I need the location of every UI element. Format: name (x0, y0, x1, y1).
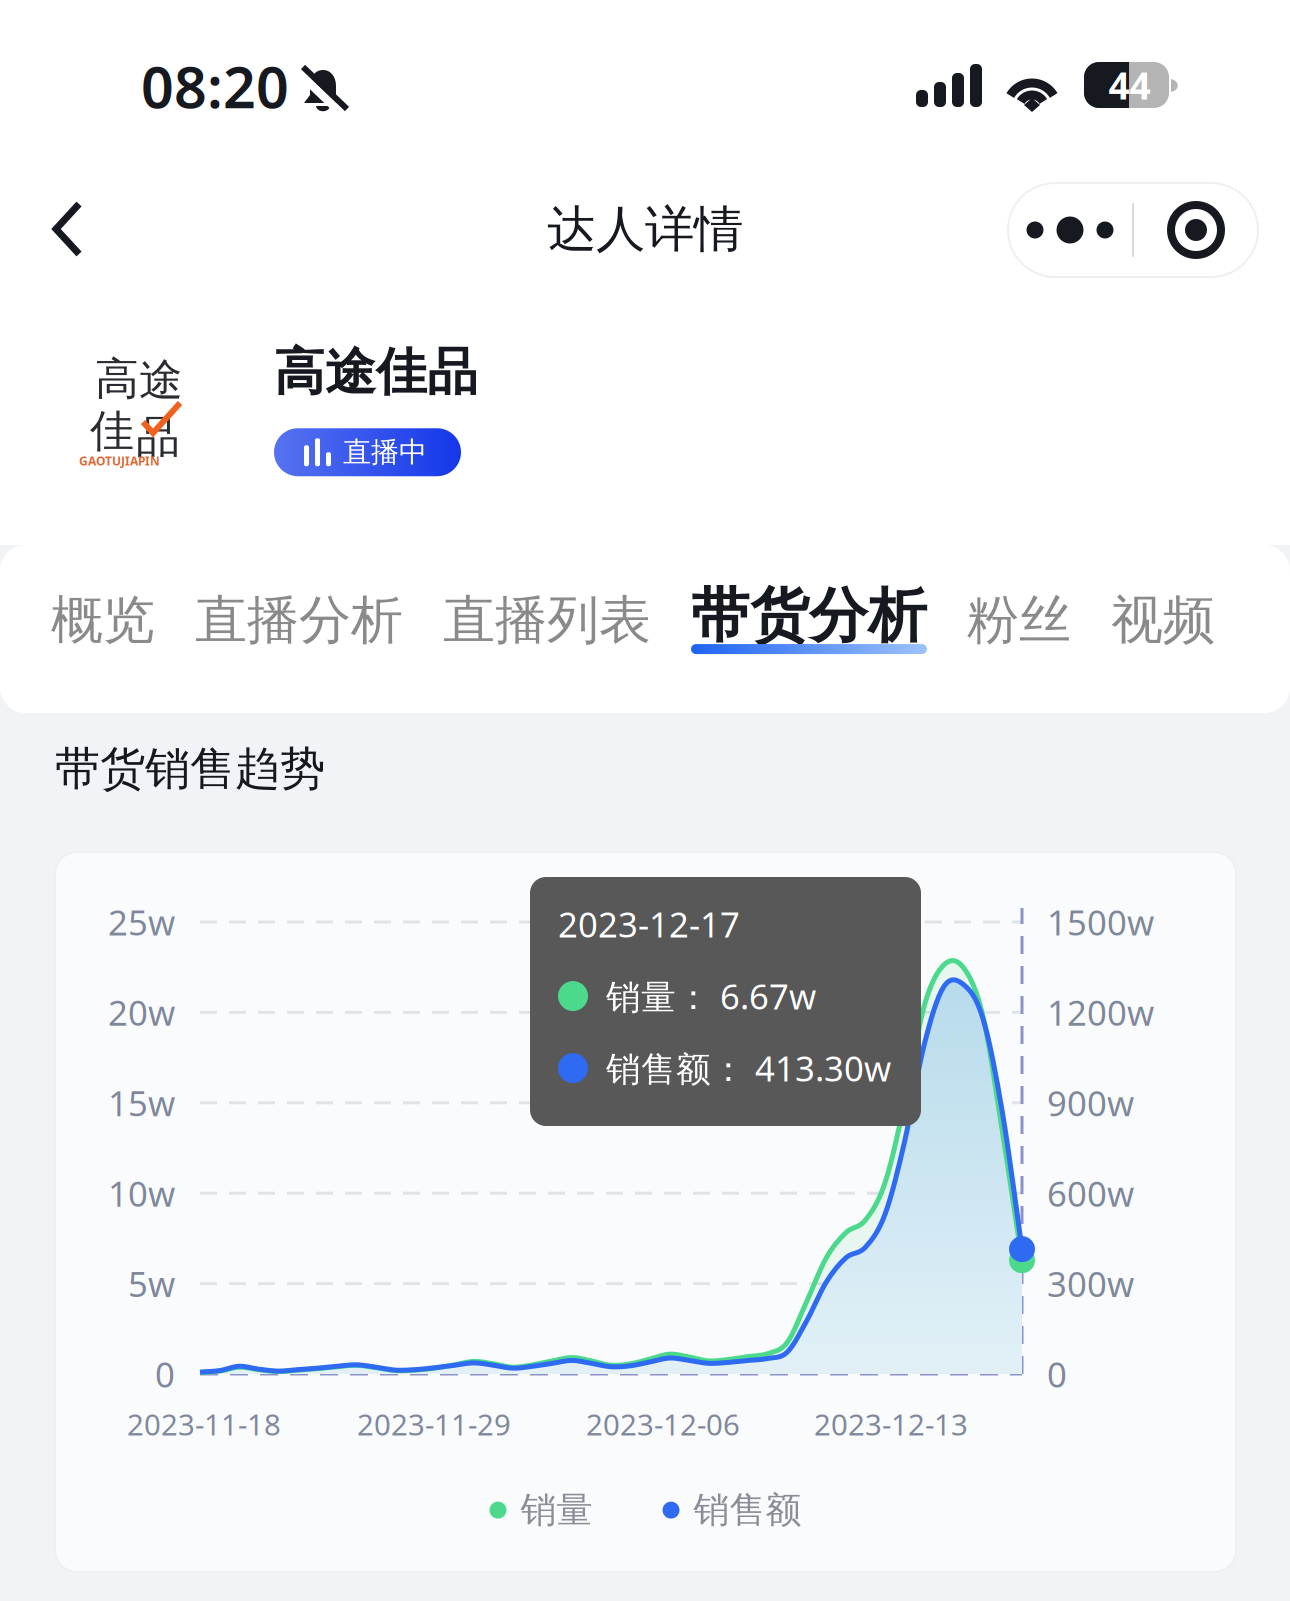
staticText: 0 (1047, 1351, 1067, 1397)
staticText: 300w (1047, 1261, 1134, 1307)
staticText: 0 (155, 1351, 175, 1397)
staticText: 概览 (51, 588, 155, 652)
staticText: 44 (1108, 60, 1150, 110)
staticText: 粉丝 (967, 588, 1071, 652)
button[interactable]: 粉丝 (947, 588, 1091, 654)
staticText: 2023-11-29 (357, 1404, 511, 1443)
button[interactable]: 直播列表 (423, 588, 671, 654)
staticText: 1500w (1047, 899, 1154, 945)
staticText: 10w (108, 1170, 175, 1216)
button[interactable]: Back (39, 182, 135, 278)
staticText: 销量 (520, 1488, 592, 1532)
staticText: 品 (136, 410, 180, 464)
staticText: 15w (108, 1080, 175, 1126)
staticText: 600w (1047, 1170, 1134, 1216)
staticText: 2023-12-13 (814, 1404, 968, 1443)
staticText: GAOTUJIAPIN (79, 453, 160, 469)
staticText: 带货销售趋势 (55, 741, 325, 797)
button[interactable]: More (1008, 183, 1132, 277)
staticText: 佳 (90, 404, 134, 458)
button[interactable]: 视频 (1091, 588, 1235, 654)
staticText: 销量： 6.67w (606, 973, 816, 1019)
button[interactable]: 概览 (31, 588, 175, 654)
button[interactable]: 直播中 (274, 428, 461, 476)
staticText: 直播分析 (195, 588, 403, 652)
staticText: 直播中 (343, 435, 427, 469)
staticText: 视频 (1111, 588, 1215, 652)
staticText: 20w (108, 989, 175, 1035)
staticText: 900w (1047, 1080, 1134, 1126)
staticText: 直播列表 (443, 588, 651, 652)
staticText: 2023-12-17 (558, 901, 740, 947)
staticText: 25w (108, 899, 175, 945)
staticText: 5w (128, 1261, 175, 1307)
staticText: 销售额 (693, 1488, 801, 1532)
staticText: 带货分析 (691, 580, 927, 652)
staticText: 08:20 (141, 48, 289, 124)
staticText: 途 (139, 353, 183, 407)
button[interactable]: 直播分析 (175, 588, 423, 654)
staticText: 达人详情 (547, 199, 743, 260)
staticText: 2023-12-06 (586, 1404, 740, 1443)
staticText: 高途佳品 (274, 341, 478, 403)
button[interactable]: Close mini program (1134, 183, 1258, 277)
staticText: 1200w (1047, 989, 1154, 1035)
staticText: 销售额： 413.30w (606, 1045, 891, 1091)
button[interactable]: 带货分析 (671, 580, 947, 654)
staticText: 2023-11-18 (127, 1404, 281, 1443)
staticText: 高 (95, 352, 139, 406)
